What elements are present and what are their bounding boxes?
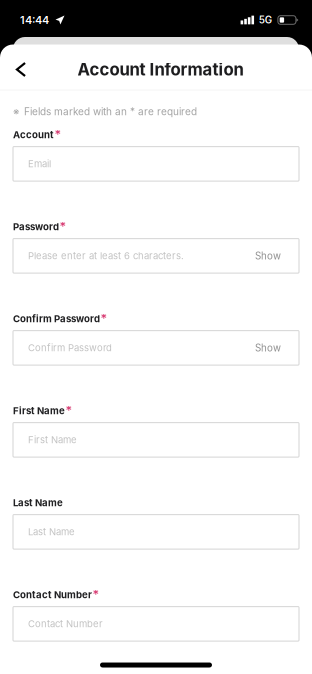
staticText: Confirm Password <box>13 312 100 324</box>
staticText: Confirm Password <box>28 342 112 354</box>
staticText: * <box>93 587 100 603</box>
staticText: Last Name <box>28 526 75 538</box>
button[interactable]: Confirm Password <box>13 331 299 365</box>
staticText: Contact Number <box>28 618 103 630</box>
staticText: Please enter at least 6 characters. <box>28 250 184 262</box>
staticText: * <box>60 219 67 235</box>
staticText: Contact Number <box>13 588 92 600</box>
staticText: * <box>66 403 73 419</box>
staticText: First Name <box>28 434 77 446</box>
button[interactable]: Back <box>0 49 37 89</box>
staticText: First Name <box>13 405 65 417</box>
staticText: Account <box>13 129 54 141</box>
button[interactable]: First Name <box>13 423 299 457</box>
staticText: Confirm Password <box>13 313 100 325</box>
staticText: Contact Number <box>13 589 92 601</box>
staticText: Account <box>13 128 54 140</box>
button[interactable]: Email <box>13 147 299 181</box>
staticText: Password <box>13 220 59 232</box>
staticText: 5G <box>259 14 272 26</box>
staticText: ※ <box>13 105 19 118</box>
staticText: Account Information <box>77 59 243 80</box>
staticText: Show <box>255 342 281 354</box>
staticText: * <box>55 127 62 143</box>
staticText: * <box>101 311 108 327</box>
staticText: Show <box>255 250 281 262</box>
staticText: Email <box>28 158 51 170</box>
button[interactable]: Please enter at least 6 characters. <box>13 239 299 273</box>
staticText: First Name <box>13 404 65 416</box>
staticText: Fields marked with an * are required <box>24 105 197 118</box>
staticText: Last Name <box>13 497 63 509</box>
staticText: 14:44 <box>20 13 49 27</box>
button[interactable]: Contact Number <box>13 607 299 641</box>
button[interactable]: Last Name <box>13 515 299 549</box>
staticText: Password <box>13 221 59 233</box>
